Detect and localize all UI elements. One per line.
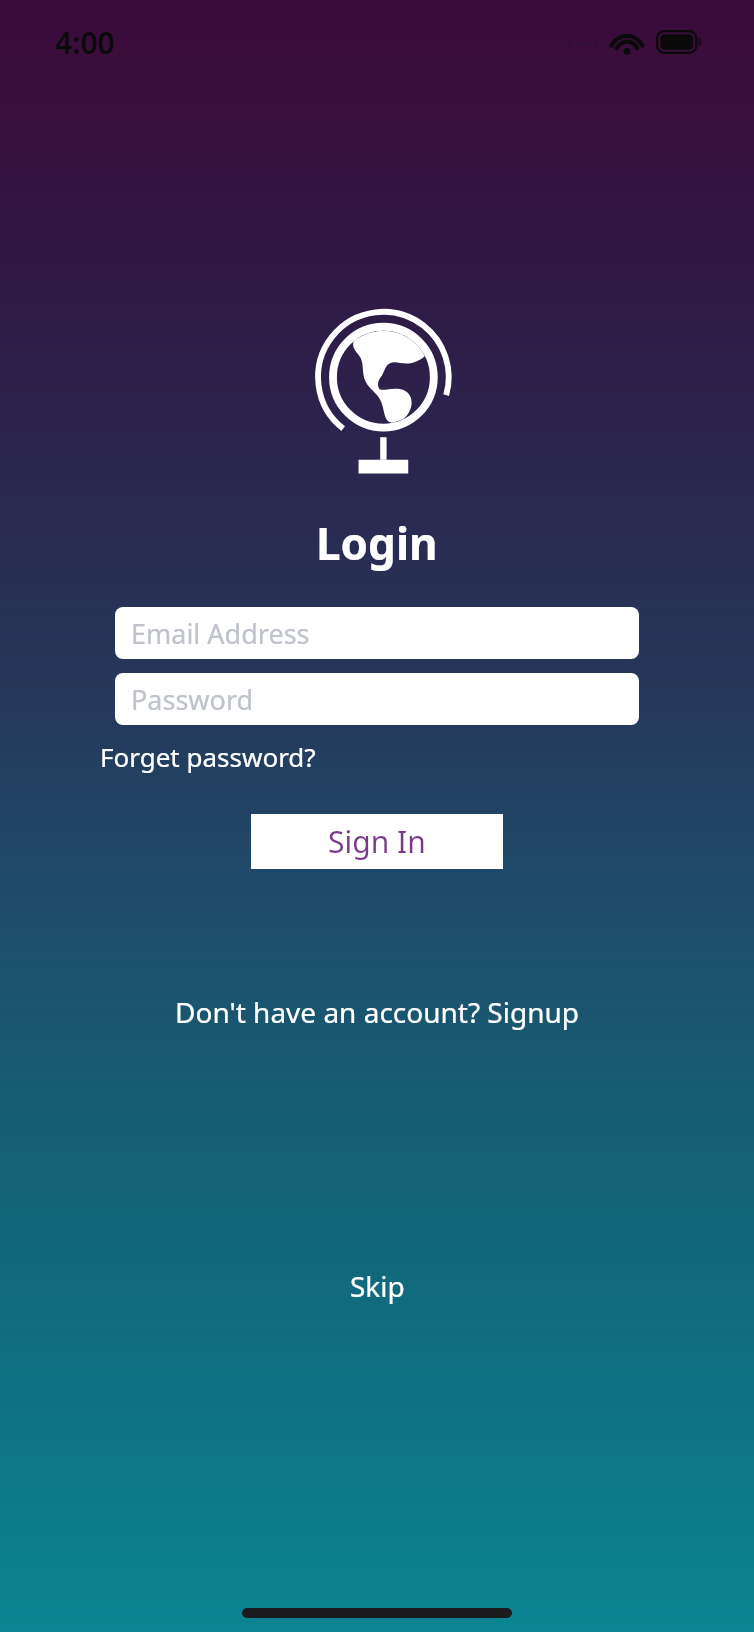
staticText: Skip	[350, 1267, 405, 1305]
button[interactable]: Forget password?	[100, 735, 316, 778]
staticText: Password	[131, 681, 254, 718]
staticText: Forget password?	[100, 739, 316, 774]
button[interactable]: Skip	[334, 1259, 421, 1313]
button[interactable]: Sign In	[251, 814, 503, 869]
staticText: Sign In	[328, 821, 426, 862]
button[interactable]: Don't have an account? Signup	[167, 987, 588, 1037]
staticText: Don't have an account? Signup	[175, 993, 580, 1031]
staticText: 4:00	[55, 22, 115, 63]
button[interactable]: Password	[115, 673, 639, 725]
button[interactable]: Email Address	[115, 607, 639, 659]
staticText: Email Address	[131, 615, 310, 652]
staticText: Login	[316, 513, 438, 573]
other: App logo	[306, 318, 448, 480]
